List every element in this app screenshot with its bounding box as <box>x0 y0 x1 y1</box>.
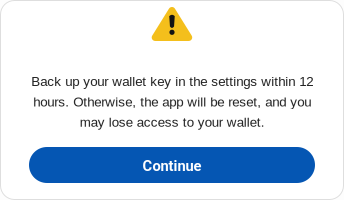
staticText: Continue <box>142 157 201 175</box>
staticText: Back up your wallet key in the settings … <box>31 74 313 130</box>
button[interactable]: Continue <box>29 147 315 183</box>
